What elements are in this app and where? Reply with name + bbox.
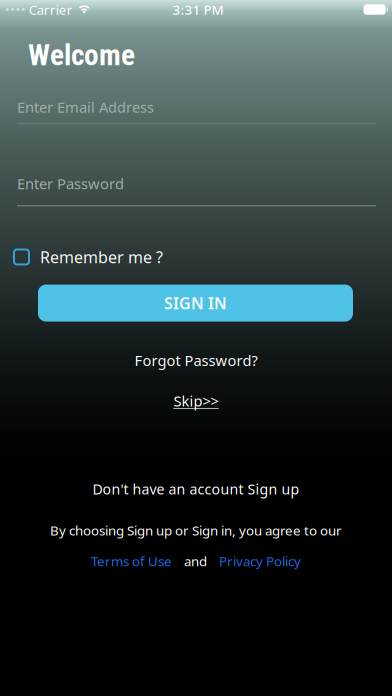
staticText: Privacy Policy <box>219 552 301 570</box>
staticText: Enter Email Address <box>17 97 154 117</box>
staticText: By choosing Sign up or Sign in, you agre… <box>50 522 342 539</box>
staticText: and <box>184 552 207 570</box>
button[interactable]: Skip>> <box>173 391 218 411</box>
staticText: Carrier <box>29 1 73 18</box>
staticText: 3:31 PM <box>172 1 223 18</box>
button[interactable]: Privacy Policy <box>219 552 301 570</box>
button[interactable]: SIGN IN <box>38 285 353 322</box>
staticText: SIGN IN <box>164 292 227 314</box>
button[interactable]: Don't have an account Sign up <box>92 479 299 498</box>
staticText: Skip>> <box>173 391 218 411</box>
staticText: Don't have an account Sign up <box>92 479 299 498</box>
button[interactable]: Terms of Use <box>91 552 172 570</box>
staticText: Terms of Use <box>91 552 172 570</box>
staticText: Welcome <box>28 38 135 72</box>
button[interactable]: Remember me ? <box>0 246 163 267</box>
staticText: Enter Password <box>17 174 124 193</box>
button[interactable]: Forgot Password? <box>134 351 257 370</box>
staticText: Remember me ? <box>40 246 163 267</box>
staticText: Forgot Password? <box>134 351 257 370</box>
